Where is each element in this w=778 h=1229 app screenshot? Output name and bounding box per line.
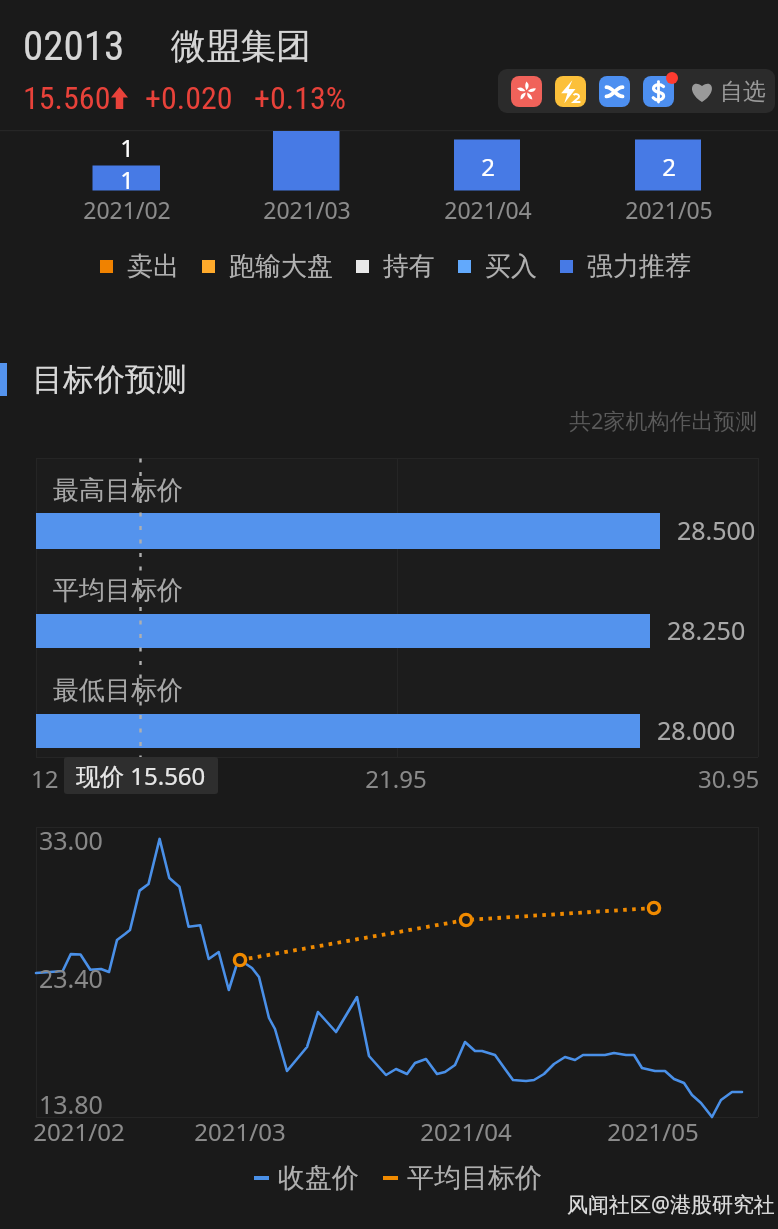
staticText: +0.020 [145,79,233,117]
button[interactable]: 卖出 [100,250,179,283]
staticText: 1 [7,131,247,164]
staticText: 23.40 [39,961,103,995]
staticText: 2021/02 [0,1115,199,1148]
staticText: 收盘价 [278,1161,359,1195]
staticText: 平均目标价 [407,1161,542,1195]
staticText: +0.13% [254,79,346,117]
staticText: 买入 [485,250,537,283]
staticText: 2021/02 [7,194,247,225]
staticText: 微盟集团 [171,24,311,68]
button[interactable]: 平均目标价 [383,1161,542,1195]
staticText: 最高目标价 [53,474,183,507]
staticText: 30.95 [698,762,760,795]
button[interactable]: 自选 [691,77,766,106]
staticText: 自选 [720,77,766,106]
staticText: 风闻社区@港股研究社 [567,1190,775,1219]
button[interactable]: 买入 [458,250,537,283]
staticText: 15.560 [23,79,111,117]
staticText: 强力推荐 [587,250,691,283]
staticText: 卖出 [127,250,179,283]
button[interactable]: Level 2 quotes [555,76,586,107]
staticText: 最低目标价 [53,674,183,707]
button[interactable]: 持有 [356,250,435,283]
staticText: 2021/04 [368,194,608,225]
staticText: 28.250 [667,613,746,647]
staticText: 02013 [23,22,125,70]
button[interactable]: 跑输大盘 [202,250,333,283]
staticText: 2021/05 [549,194,778,225]
staticText: 21.95 [276,762,516,795]
staticText: 28.000 [657,713,736,747]
staticText: 2 [368,150,608,183]
staticText: 2021/03 [187,194,427,225]
staticText: 共2家机构作出预测 [569,405,758,435]
staticText: 2021/03 [120,1115,360,1148]
staticText: 1 [7,163,247,196]
staticText: 持有 [383,250,435,283]
button[interactable]: Currency [643,76,674,107]
staticText: 平均目标价 [53,574,183,607]
button[interactable]: 现价 15.560 [64,757,218,794]
button[interactable]: HK market [511,76,542,107]
staticText: 28.500 [677,513,756,547]
button[interactable]: 强力推荐 [560,250,691,283]
staticText: 12 [31,762,59,795]
button[interactable]: 收盘价 [254,1161,359,1195]
staticText: 现价 15.560 [76,759,206,792]
staticText: 13.80 [39,1087,103,1121]
staticText: 33.00 [39,823,103,857]
button[interactable]: 目标价预测 [0,360,778,399]
staticText: 2021/05 [533,1115,773,1148]
button[interactable]: Trade [599,76,630,107]
staticText: 2 [549,150,778,183]
staticText: 跑输大盘 [229,250,333,283]
staticText: 目标价预测 [32,360,187,399]
staticText: 2021/04 [346,1115,586,1148]
